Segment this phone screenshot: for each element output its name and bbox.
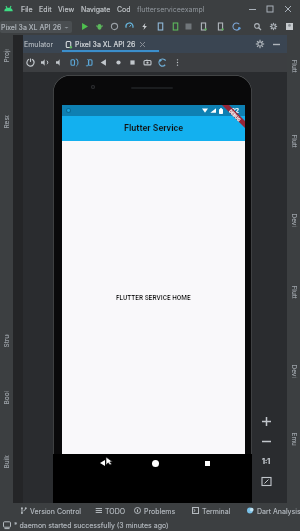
button[interactable]: Fit to screen (256, 471, 276, 491)
button[interactable]: Flutter Performance (287, 105, 300, 177)
button[interactable]: Device File Explorer (287, 335, 300, 407)
staticText: * daemon started successfully (3 minutes… (14, 521, 169, 529)
staticText: Pixel 3a XL API 26 (75, 40, 136, 48)
button[interactable]: Settings (252, 35, 267, 53)
staticText: Emulator (289, 432, 297, 445)
button[interactable]: Cod (114, 5, 134, 13)
button[interactable]: Version Control (19, 503, 83, 518)
button[interactable]: Flash (138, 20, 151, 33)
button[interactable]: Account (283, 20, 296, 33)
button[interactable]: Back (97, 56, 110, 69)
button[interactable]: Bookmarks (0, 375, 13, 421)
button[interactable]: Actual size (256, 451, 276, 471)
staticText: Flutter Service (124, 123, 184, 134)
button[interactable]: Recent apps (197, 454, 217, 472)
staticText: Flutter Outline (289, 59, 297, 72)
staticText: flutterserviceexampl (137, 5, 205, 13)
staticText: Problems (144, 507, 176, 515)
button[interactable]: Sync (230, 20, 243, 33)
button[interactable]: Flutter Inspector (287, 263, 300, 321)
button[interactable]: Attach (169, 20, 182, 33)
staticText: Edit (39, 5, 52, 13)
staticText: Dart Analysis (257, 507, 300, 515)
staticText: Flutter Performance (289, 134, 297, 147)
staticText: Version Control (30, 507, 82, 515)
button[interactable]: Zoom out (256, 431, 276, 451)
staticText: Cod (117, 5, 131, 13)
staticText: TODO (105, 507, 126, 515)
button[interactable]: Profile (123, 20, 136, 33)
button[interactable]: Pixel 3a XL API 26 (0, 21, 72, 33)
staticText: FLUTTER SERVICE HOME (116, 294, 191, 302)
staticText: Terminal (202, 507, 231, 515)
button[interactable]: Pixel 3a XL API 26 (62, 35, 159, 53)
button[interactable]: Power (24, 56, 37, 69)
staticText: 02 (231, 107, 239, 115)
button[interactable]: Snapshot (156, 56, 169, 69)
button[interactable]: Overview (126, 56, 139, 69)
button[interactable]: Close (279, 0, 297, 18)
button[interactable]: Flutter Outline (287, 39, 300, 93)
button[interactable]: Search (251, 20, 264, 33)
staticText: Bookmarks (2, 391, 10, 404)
button[interactable]: File (18, 5, 36, 13)
button[interactable]: Edit (36, 5, 55, 13)
button[interactable]: Debug (93, 20, 106, 33)
button[interactable]: Back (92, 454, 112, 472)
button[interactable]: Run (78, 20, 91, 33)
button[interactable]: Problems (133, 503, 177, 518)
button[interactable]: Run config (197, 20, 210, 33)
button[interactable]: Hot reload (108, 20, 121, 33)
button[interactable]: Emulator (23, 35, 55, 53)
button[interactable]: Maximize (261, 0, 279, 18)
staticText: Structure (2, 334, 10, 347)
staticText: Device Manager (289, 213, 297, 226)
staticText: Resource Manager (2, 115, 10, 128)
staticText: Navigate (81, 5, 111, 13)
button[interactable]: Resource Manager (0, 87, 13, 157)
staticText: Device File Explorer (289, 364, 297, 377)
staticText: Project (2, 49, 10, 62)
button[interactable]: Volume up (38, 56, 51, 69)
button[interactable]: Home (112, 56, 125, 69)
button[interactable]: Minimize (243, 0, 261, 18)
button[interactable]: TODO (94, 503, 127, 518)
button[interactable]: Emulator (287, 421, 300, 457)
button[interactable]: Hide (269, 35, 284, 53)
button[interactable]: Volume down (53, 56, 66, 69)
button[interactable]: Device Manager (287, 191, 300, 249)
button[interactable]: Home (145, 454, 165, 472)
button[interactable]: Settings (267, 20, 280, 33)
button[interactable]: Rotate left (68, 56, 81, 69)
button[interactable]: Project (0, 39, 13, 73)
button[interactable]: Terminal (191, 503, 232, 518)
button[interactable]: Zoom in (256, 411, 276, 431)
button[interactable]: Navigate (78, 5, 114, 13)
button[interactable]: Stop (182, 20, 195, 33)
staticText: Pixel 3a XL API 26 (1, 23, 62, 31)
button[interactable]: Rotate right (82, 56, 95, 69)
staticText: Flutter Inspector (289, 285, 297, 298)
staticText: 1:1 (262, 457, 271, 465)
button[interactable]: View (55, 5, 78, 13)
button[interactable]: More (171, 56, 184, 69)
staticText: Emulator (24, 40, 54, 48)
button[interactable]: Build Variants (0, 435, 13, 489)
staticText: Build Variants (2, 455, 10, 468)
staticText: DEBUG (228, 109, 242, 123)
button[interactable]: Device (154, 20, 167, 33)
button[interactable]: Structure (0, 321, 13, 361)
button[interactable]: Dart Analysis (246, 503, 300, 518)
staticText: View (58, 5, 75, 13)
button[interactable]: Screenshot (141, 56, 154, 69)
button[interactable]: Device mgr (214, 20, 227, 33)
staticText: File (21, 5, 33, 13)
